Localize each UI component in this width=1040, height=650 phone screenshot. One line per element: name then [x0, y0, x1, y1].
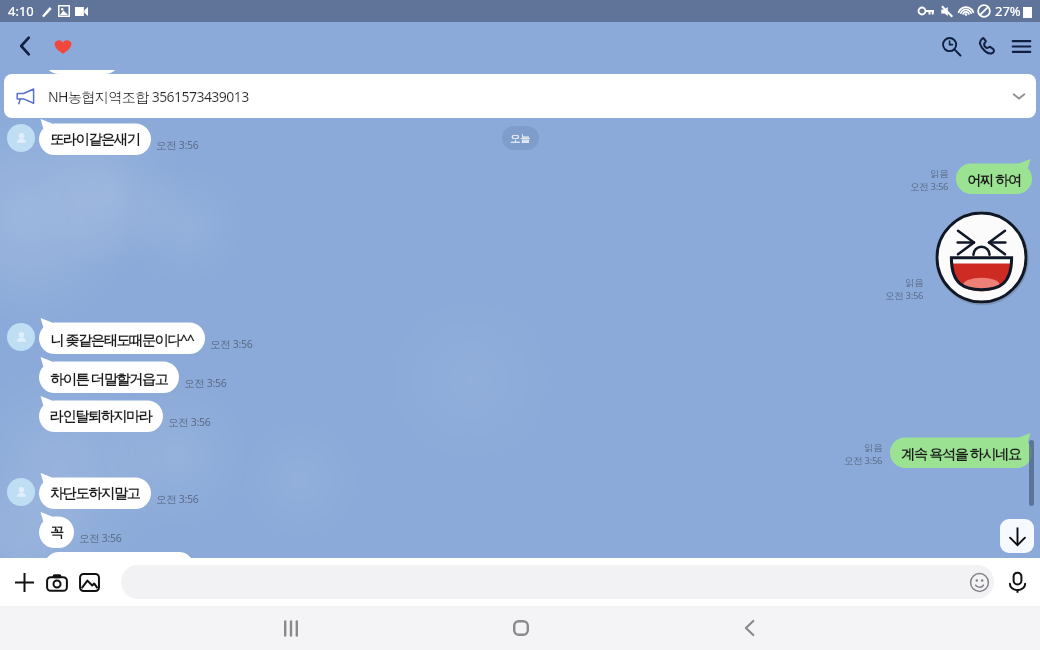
staticText: 오전 3:56	[910, 180, 949, 193]
staticText: 하이튼 더말할거읍고	[50, 369, 168, 388]
staticText: 오전 3:56	[885, 289, 924, 302]
button[interactable]: 라인탈퇴하지마라	[39, 396, 163, 432]
staticText: 읽음	[864, 442, 883, 454]
staticText: 어찌 하여	[967, 170, 1021, 189]
button[interactable]: Call	[969, 29, 1004, 64]
staticText: 오전 3:56	[168, 415, 211, 429]
staticText: 읽음	[905, 277, 924, 289]
button[interactable]: Scroll to bottom	[1000, 519, 1034, 553]
staticText: 오전 3:56	[844, 454, 883, 467]
button[interactable]: Back	[635, 606, 864, 650]
button[interactable]: Menu	[1004, 29, 1039, 64]
button[interactable]: 오늘	[502, 126, 539, 150]
button[interactable]: Home	[406, 606, 635, 650]
button[interactable]: 꼭	[39, 512, 74, 548]
button[interactable]: Camera	[41, 558, 73, 606]
button[interactable]: Search	[934, 29, 969, 64]
button[interactable]: 어찌 하여	[956, 159, 1032, 194]
staticText: 계속 욕석을 하시네요	[901, 444, 1021, 463]
staticText: 오전 3:56	[156, 492, 199, 506]
button[interactable]: Sticker	[932, 208, 1031, 307]
staticText: 오전 3:56	[79, 531, 122, 545]
staticText: 니 좆같은태도때문이다^^	[50, 330, 194, 349]
staticText: NH농협지역조합 3561573439013	[48, 87, 249, 106]
button[interactable]: Profile	[7, 323, 35, 351]
button[interactable]	[121, 565, 994, 599]
staticText: 또라이같은새기	[50, 131, 140, 149]
button[interactable]: Profile	[7, 478, 35, 506]
button[interactable]: Profile	[7, 124, 35, 152]
button[interactable]: Recent apps	[176, 606, 406, 650]
button[interactable]: NH농협지역조합 3561573439013	[4, 74, 1036, 118]
button[interactable]: Voice message	[994, 558, 1040, 606]
button[interactable]: Back	[0, 22, 49, 70]
button[interactable]: Add attachment	[7, 558, 41, 606]
staticText: 차단도하지말고	[50, 485, 140, 503]
button[interactable]: Favourite	[49, 22, 76, 70]
button[interactable]: 또라이같은새기	[39, 119, 151, 155]
button[interactable]: 계속 욕석을 하시네요	[890, 433, 1032, 468]
staticText: 오전 3:56	[184, 376, 227, 390]
staticText: 라인탈퇴하지마라	[50, 408, 152, 426]
staticText: 오전 3:56	[210, 337, 253, 351]
button[interactable]: Gallery	[73, 558, 105, 606]
staticText: 4:10	[8, 2, 34, 20]
button[interactable]: 니 좆같은태도때문이다^^	[39, 318, 205, 354]
button[interactable]: 차단도하지말고	[39, 473, 151, 509]
staticText: 27%	[995, 2, 1021, 20]
staticText: 오전 3:56	[156, 138, 199, 152]
staticText: 꼭	[50, 524, 63, 542]
staticText: 읽음	[930, 168, 949, 180]
staticText: 오늘	[510, 132, 531, 145]
button[interactable]: 하이튼 더말할거읍고	[39, 357, 179, 393]
